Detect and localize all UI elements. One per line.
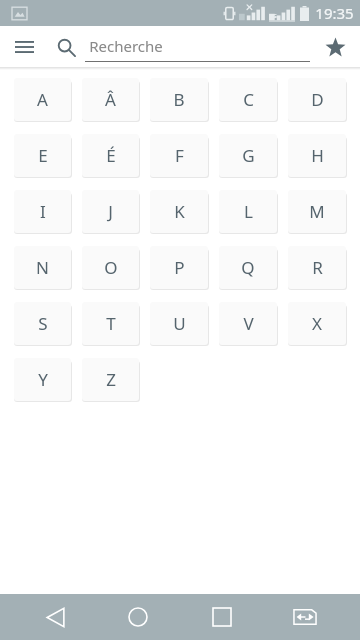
staticText: G	[242, 144, 255, 167]
button[interactable]: J	[82, 190, 139, 233]
staticText: C	[243, 88, 254, 111]
staticText: Â	[105, 88, 116, 111]
staticText: I	[40, 200, 46, 223]
staticText: É	[106, 144, 116, 167]
button[interactable]: R	[288, 246, 346, 289]
button[interactable]: E	[14, 134, 71, 177]
button[interactable]: U	[150, 302, 208, 345]
button[interactable]: C	[219, 78, 277, 121]
staticText: N	[36, 256, 49, 279]
button[interactable]: P	[150, 246, 208, 289]
button[interactable]: G	[219, 134, 277, 177]
staticText: R	[312, 256, 323, 279]
button[interactable]: F	[150, 134, 208, 177]
staticText: Z	[106, 368, 116, 391]
staticText: 19:35	[315, 3, 354, 23]
staticText: Recherche	[89, 36, 163, 56]
button[interactable]: B	[150, 78, 208, 121]
button[interactable]: Y	[14, 358, 71, 401]
staticText: X	[312, 312, 322, 335]
button[interactable]: H	[288, 134, 346, 177]
button[interactable]: Home	[110, 594, 166, 640]
button[interactable]: Recent apps	[194, 594, 250, 640]
staticText: P	[174, 256, 185, 279]
button[interactable]: Recherche	[85, 32, 310, 62]
staticText: M	[309, 200, 325, 223]
button[interactable]: X	[288, 302, 346, 345]
button[interactable]: N	[14, 246, 71, 289]
staticText: O	[104, 256, 118, 279]
staticText: H	[311, 144, 324, 167]
button[interactable]: L	[219, 190, 277, 233]
staticText: V	[243, 312, 254, 335]
button[interactable]: T	[82, 302, 139, 345]
staticText: F	[175, 144, 184, 167]
button[interactable]: D	[288, 78, 346, 121]
button[interactable]: A	[14, 78, 71, 121]
button[interactable]: K	[150, 190, 208, 233]
button[interactable]: Menu	[6, 29, 42, 65]
staticText: J	[108, 200, 113, 223]
button[interactable]: Switch screen	[277, 594, 333, 640]
button[interactable]: O	[82, 246, 139, 289]
staticText: K	[174, 200, 185, 223]
staticText: B	[173, 88, 185, 111]
button[interactable]: V	[219, 302, 277, 345]
button[interactable]: É	[82, 134, 139, 177]
staticText: T	[106, 312, 116, 335]
button[interactable]: Favorites	[316, 28, 354, 66]
button[interactable]: Q	[219, 246, 277, 289]
button[interactable]: Back	[27, 594, 83, 640]
button[interactable]: Â	[82, 78, 139, 121]
button[interactable]: M	[288, 190, 346, 233]
staticText: S	[38, 312, 48, 335]
staticText: D	[311, 88, 324, 111]
staticText: Q	[241, 256, 255, 279]
button[interactable]: Z	[82, 358, 139, 401]
staticText: L	[244, 200, 253, 223]
button[interactable]: S	[14, 302, 71, 345]
button[interactable]: Search	[50, 31, 82, 63]
staticText: Y	[38, 368, 48, 391]
staticText: U	[173, 312, 186, 335]
button[interactable]: I	[14, 190, 71, 233]
staticText: E	[38, 144, 48, 167]
staticText: A	[37, 88, 48, 111]
staticText: 2G	[269, 12, 277, 20]
